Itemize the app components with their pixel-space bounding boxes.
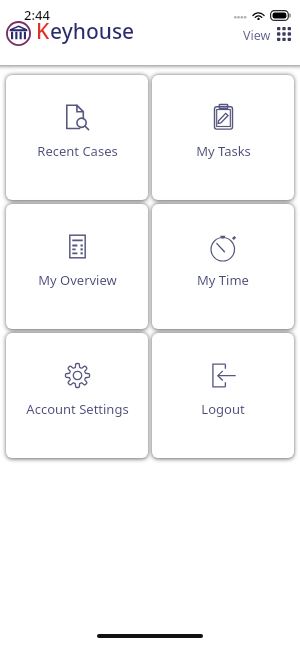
button[interactable]: My Tasks [152,75,294,200]
button[interactable]: Recent Cases [6,75,148,200]
staticText: Recent Cases [37,142,118,160]
staticText: eyhouse [50,17,135,46]
staticText: K [36,17,50,46]
staticText: 2:44 [24,6,50,24]
button[interactable]: Logout [152,333,294,458]
button[interactable]: Account Settings [6,333,148,458]
staticText: My Time [197,271,249,289]
button[interactable]: View [239,23,295,46]
staticText: View [243,27,271,44]
staticText: Logout [201,400,245,418]
staticText: Account Settings [26,400,129,418]
button[interactable]: My Time [152,204,294,329]
staticText: My Overview [38,271,117,289]
button[interactable]: My Overview [6,204,148,329]
staticText: My Tasks [196,142,251,160]
